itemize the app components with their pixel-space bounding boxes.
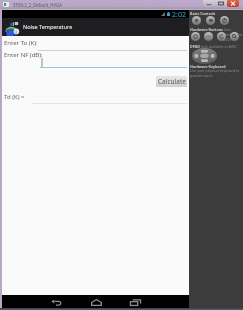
staticText: Basic Controls <box>190 11 216 16</box>
button[interactable]: Volume up <box>206 16 215 25</box>
staticText: Use your physical keyboard to provide in… <box>190 68 243 78</box>
staticText: Hardware Keyboard <box>190 64 226 69</box>
staticText: Td (K) = <box>4 93 25 101</box>
staticText: Noise Temperature <box>23 23 73 30</box>
button[interactable]: Minimize <box>203 0 215 7</box>
button[interactable]: Search <box>230 32 239 41</box>
staticText: 2:02 <box>172 10 186 18</box>
staticText: (not available in AVD) <box>223 27 243 42</box>
staticText: Calculate <box>158 77 186 86</box>
button[interactable]: Calculate <box>156 76 187 87</box>
button[interactable]: Back <box>47 295 65 308</box>
button[interactable]: Recent apps <box>126 295 144 308</box>
button[interactable]: Close <box>227 0 239 7</box>
button[interactable]: Back <box>217 32 226 41</box>
button[interactable]: Power <box>220 16 229 25</box>
button[interactable]: Volume down <box>192 16 201 25</box>
staticText: Hardware Buttons <box>190 27 223 32</box>
button[interactable]: D-pad <box>192 48 217 64</box>
staticText: Enter To (K): <box>4 39 38 47</box>
button[interactable]: Menu <box>204 32 213 41</box>
staticText: (not available in AVD) <box>200 44 237 49</box>
button[interactable]: Maximize <box>215 0 227 7</box>
button[interactable]: Home <box>191 32 200 41</box>
staticText: Enter NF (dB): <box>4 51 43 59</box>
button[interactable]: Home <box>87 295 105 308</box>
staticText: DPAD <box>190 44 200 49</box>
staticText: 5556:2_2_Default_HVGA <box>13 2 63 8</box>
staticText: C:\Users\dev\workspace\NoiseTemp\src - E… <box>62 2 167 8</box>
